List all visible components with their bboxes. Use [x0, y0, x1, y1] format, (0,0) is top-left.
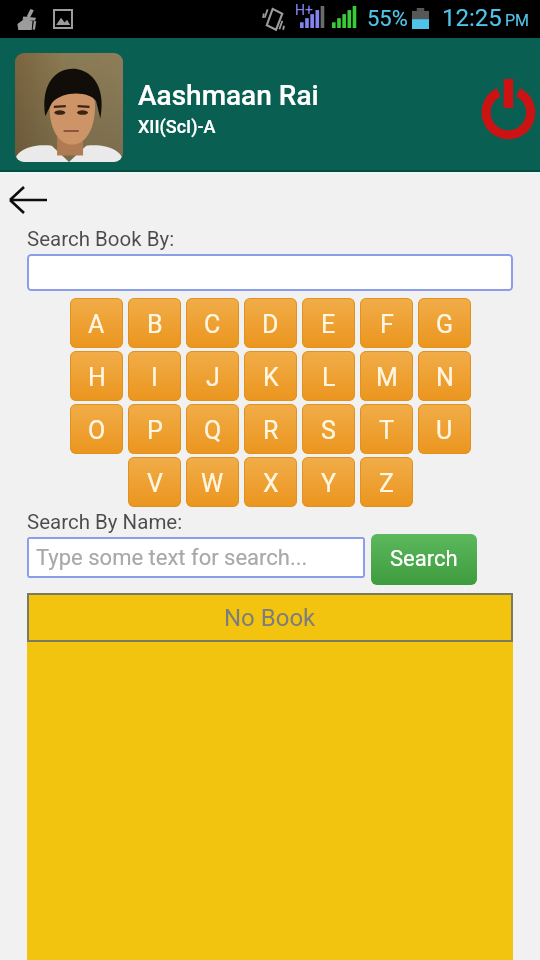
button[interactable]: B [128, 298, 181, 348]
staticText: T [379, 416, 394, 445]
staticText: E [321, 310, 336, 339]
staticText: D [262, 310, 279, 339]
staticText: G [436, 310, 454, 339]
staticText: B [147, 310, 163, 339]
button[interactable]: D [244, 298, 297, 348]
staticText: W [201, 469, 224, 498]
button[interactable]: T [360, 404, 413, 454]
button[interactable]: G [418, 298, 471, 348]
staticText: P [147, 416, 163, 445]
button[interactable]: Q [186, 404, 239, 454]
staticText: X [263, 469, 279, 498]
staticText: V [147, 469, 163, 498]
staticText: 12:25 [442, 4, 502, 32]
button[interactable]: F [360, 298, 413, 348]
button[interactable]: I [128, 351, 181, 401]
staticText: Search By Name: [27, 510, 183, 534]
staticText: Y [321, 469, 337, 498]
staticText: O [88, 416, 106, 445]
staticText: Q [204, 416, 222, 445]
staticText: M [376, 363, 398, 392]
button[interactable]: J [186, 351, 239, 401]
button[interactable]: Type some text for search... [27, 537, 365, 578]
button[interactable]: Z [360, 457, 413, 507]
button[interactable]: V [128, 457, 181, 507]
button[interactable]: S [302, 404, 355, 454]
button[interactable]: N [418, 351, 471, 401]
button[interactable] [27, 254, 513, 291]
button[interactable]: No Book [27, 593, 513, 642]
button[interactable]: X [244, 457, 297, 507]
staticText: L [322, 363, 336, 392]
button[interactable]: Search [371, 534, 477, 585]
button[interactable]: L [302, 351, 355, 401]
button[interactable]: Back [2, 184, 52, 216]
button[interactable]: Power off [478, 74, 540, 138]
staticText: U [436, 416, 453, 445]
button[interactable]: E [302, 298, 355, 348]
staticText: J [206, 363, 220, 392]
staticText: R [263, 416, 279, 445]
button[interactable]: C [186, 298, 239, 348]
staticText: No Book [224, 604, 316, 632]
staticText: C [204, 310, 221, 339]
staticText: Search Book By: [27, 227, 175, 251]
staticText: Type some text for search... [36, 545, 308, 571]
staticText: I [151, 363, 158, 392]
button[interactable]: U [418, 404, 471, 454]
staticText: Search [390, 546, 458, 572]
button[interactable]: M [360, 351, 413, 401]
button[interactable]: O [70, 404, 123, 454]
staticText: N [436, 363, 454, 392]
button[interactable]: R [244, 404, 297, 454]
staticText: S [321, 416, 336, 445]
staticText: PM [505, 11, 530, 30]
staticText: H [88, 363, 106, 392]
button[interactable]: P [128, 404, 181, 454]
button[interactable]: H [70, 351, 123, 401]
staticText: F [380, 310, 394, 339]
staticText: Z [379, 469, 394, 498]
staticText: XII(ScI)-A [138, 116, 216, 137]
staticText: 55% [367, 6, 408, 32]
staticText: A [88, 310, 105, 339]
button[interactable]: K [244, 351, 297, 401]
staticText: H+ [295, 2, 313, 18]
button[interactable]: W [186, 457, 239, 507]
button[interactable]: Y [302, 457, 355, 507]
staticText: K [263, 363, 279, 392]
button[interactable]: A [70, 298, 123, 348]
staticText: Aashmaan Rai [138, 79, 319, 112]
